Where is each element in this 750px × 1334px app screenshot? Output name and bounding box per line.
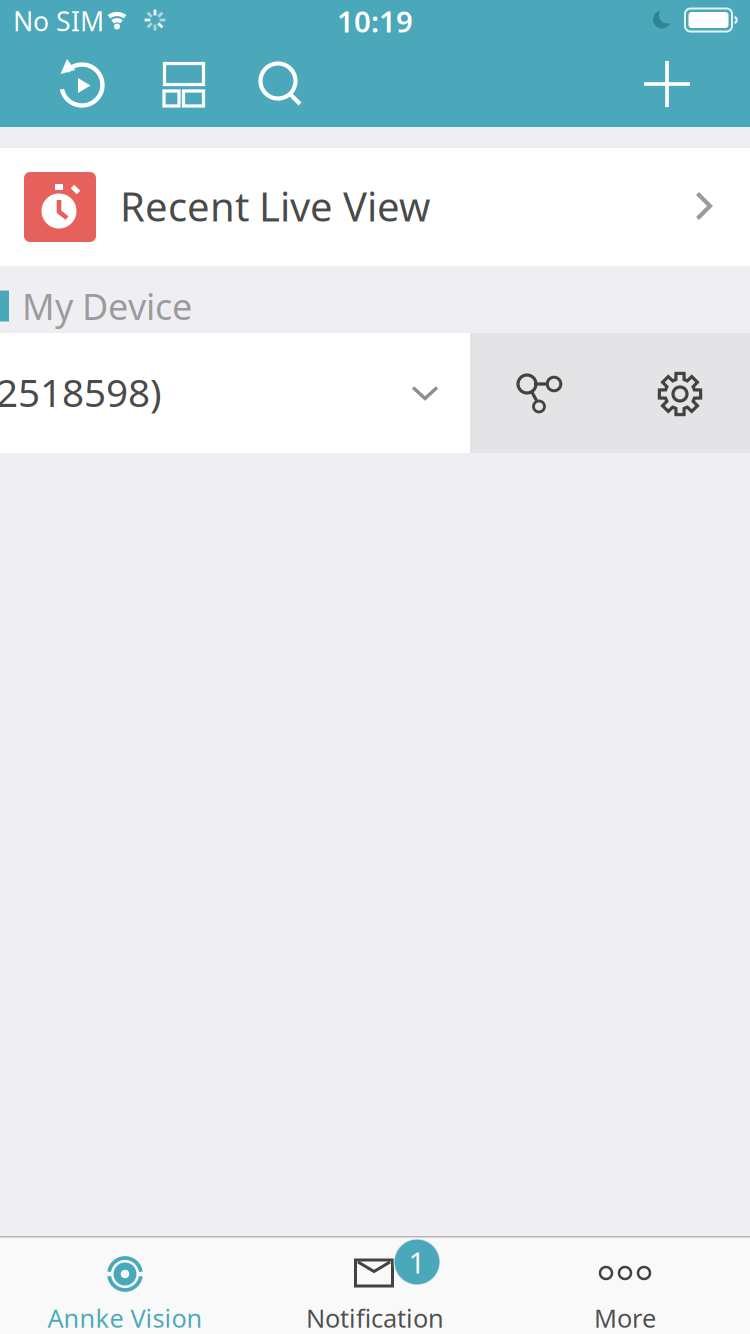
staticText: No SIM bbox=[13, 3, 104, 39]
staticText: 2518598) bbox=[0, 366, 162, 418]
button[interactable]: Share bbox=[470, 333, 610, 453]
button[interactable]: Search bbox=[239, 42, 323, 126]
staticText: Recent Live View bbox=[120, 179, 430, 232]
button[interactable]: 1 bbox=[250, 1236, 500, 1334]
button[interactable]: Settings bbox=[610, 333, 750, 453]
button[interactable]: Playback bbox=[40, 42, 124, 126]
button[interactable]: Recent Live View bbox=[0, 148, 750, 266]
button[interactable]: Select device bbox=[0, 333, 470, 453]
button[interactable]: Multi-screen live view bbox=[142, 42, 226, 126]
staticText: My Device bbox=[22, 282, 192, 330]
staticText: Annke Vision bbox=[47, 1301, 202, 1334]
button[interactable]: More bbox=[500, 1236, 750, 1334]
button[interactable]: Annke Vision bbox=[0, 1236, 250, 1334]
button[interactable]: Add device bbox=[625, 42, 709, 126]
staticText: More bbox=[594, 1301, 656, 1334]
staticText: 10:19 bbox=[337, 1, 413, 40]
staticText: 1 bbox=[408, 1242, 425, 1281]
staticText: Notification bbox=[306, 1301, 444, 1334]
